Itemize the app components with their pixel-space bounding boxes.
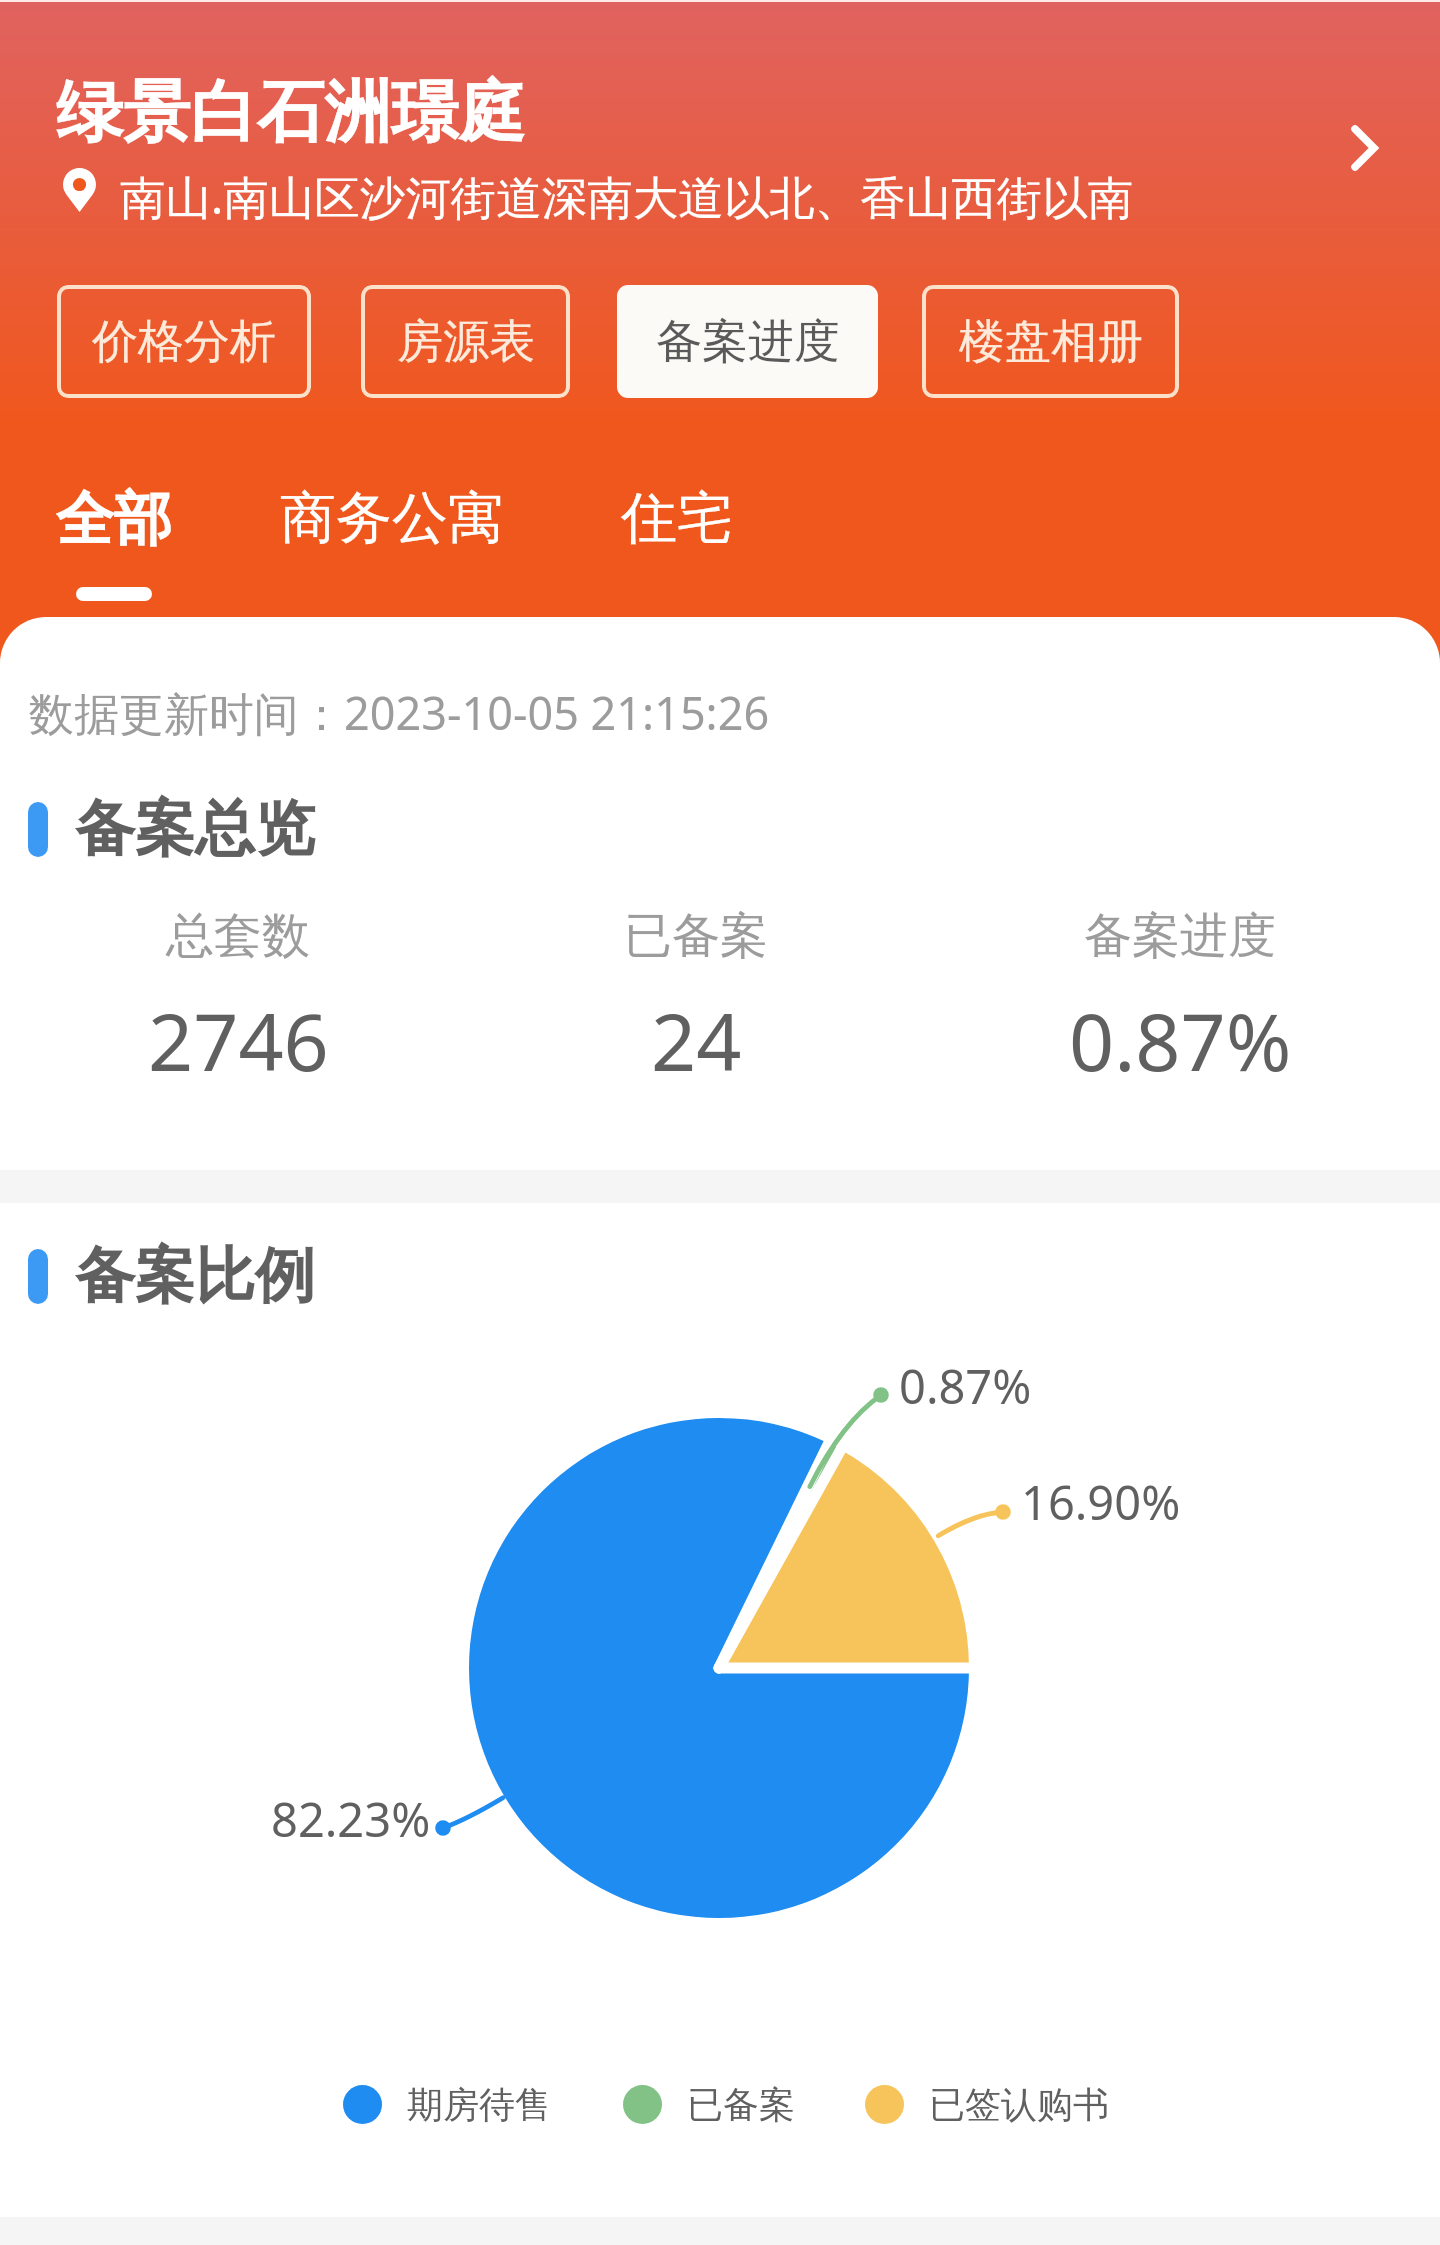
button[interactable]: 已备案 bbox=[536, 906, 856, 1095]
staticText: 房源表 bbox=[397, 313, 535, 371]
staticText: 16.90% bbox=[1021, 1470, 1181, 1534]
staticText: 全部 bbox=[56, 483, 172, 556]
button[interactable]: 楼盘相册 bbox=[922, 285, 1179, 398]
button[interactable]: 备案进度 bbox=[617, 285, 878, 398]
staticText: 24 bbox=[651, 987, 742, 1095]
staticText: 已备案 bbox=[624, 906, 768, 966]
button[interactable]: 已备案 bbox=[623, 2082, 795, 2127]
staticText: 2746 bbox=[148, 987, 329, 1095]
staticText: 数据更新时间：2023-10-05 21:15:26 bbox=[29, 682, 770, 743]
button[interactable]: 总套数 bbox=[78, 906, 398, 1095]
staticText: 价格分析 bbox=[92, 313, 276, 371]
staticText: 住宅 bbox=[621, 483, 733, 554]
button[interactable]: 全部 bbox=[56, 483, 172, 601]
button[interactable]: 商务公寓 bbox=[280, 483, 504, 585]
staticText: 备案比例 bbox=[75, 1238, 315, 1314]
staticText: 备案进度 bbox=[656, 313, 840, 371]
staticText: 已签认购书 bbox=[929, 2082, 1109, 2127]
staticText: 南山.南山区沙河街道深南大道以北、香山西街以南 bbox=[120, 165, 1134, 227]
button[interactable]: 住宅 bbox=[621, 483, 733, 585]
staticText: 已备案 bbox=[687, 2082, 795, 2127]
button[interactable]: Open project detail bbox=[1313, 98, 1413, 198]
staticText: 82.23% bbox=[271, 1787, 431, 1851]
button[interactable]: 备案进度 bbox=[1020, 906, 1340, 1095]
staticText: 商务公寓 bbox=[280, 483, 504, 554]
staticText: 期房待售 bbox=[407, 2082, 551, 2127]
staticText: 备案总览 bbox=[75, 791, 315, 867]
staticText: 绿景白石洲璟庭 bbox=[56, 70, 525, 154]
button[interactable]: 期房待售 bbox=[343, 2082, 551, 2127]
staticText: 0.87% bbox=[899, 1354, 1032, 1418]
button[interactable]: 已签认购书 bbox=[865, 2082, 1109, 2127]
button[interactable]: 房源表 bbox=[361, 285, 570, 398]
button[interactable]: 绿景白石洲璟庭 bbox=[40, 50, 1220, 240]
staticText: 0.87% bbox=[1069, 987, 1292, 1095]
button[interactable]: 价格分析 bbox=[57, 285, 311, 398]
staticText: 总套数 bbox=[166, 906, 310, 966]
staticText: 楼盘相册 bbox=[959, 313, 1143, 371]
staticText: 备案进度 bbox=[1084, 906, 1276, 966]
